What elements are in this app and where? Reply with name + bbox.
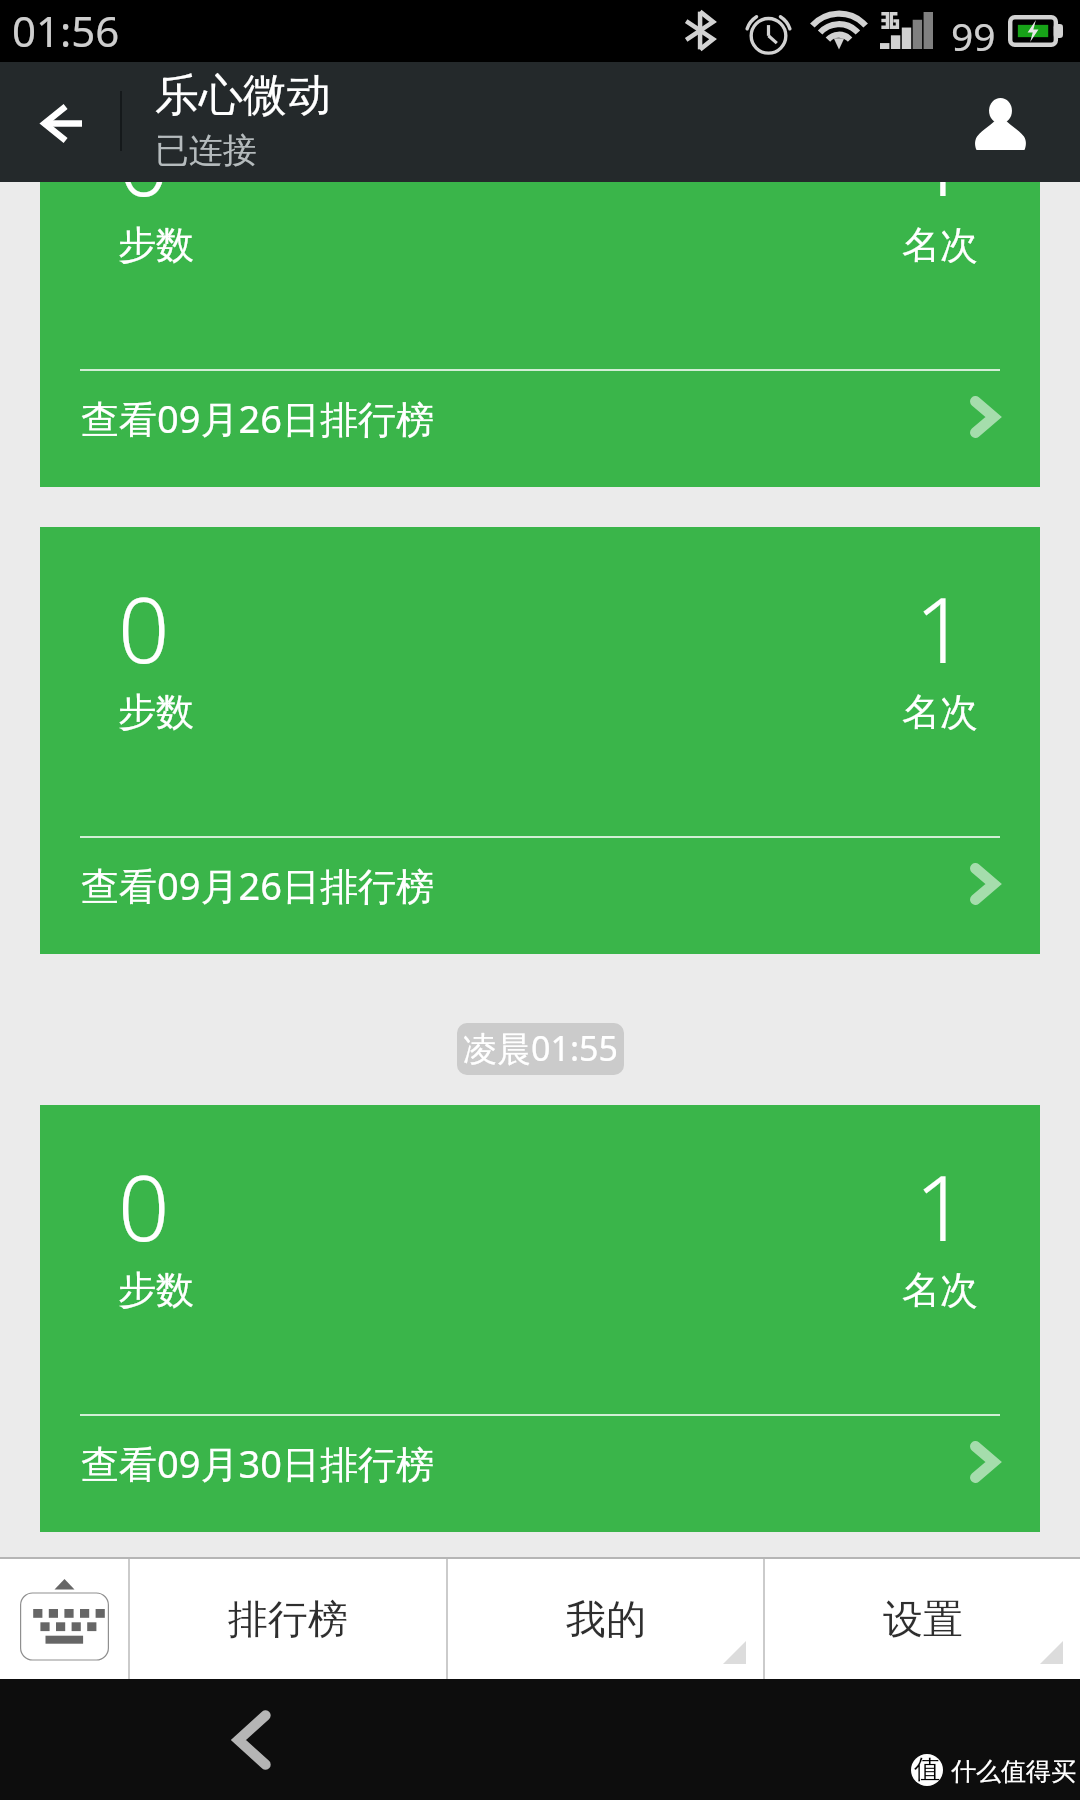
staticText: 我的 xyxy=(566,1594,646,1644)
button[interactable]: 我的 xyxy=(448,1559,763,1679)
staticText: 查看09月26日排行榜 xyxy=(81,392,434,444)
button[interactable]: Profile xyxy=(950,62,1080,182)
staticText: 步数 xyxy=(118,688,194,736)
staticText: 值 xyxy=(914,1754,940,1785)
staticText: 什么值得买 xyxy=(951,1756,1076,1787)
staticText: 步数 xyxy=(118,1266,194,1314)
button[interactable]: 排行榜 xyxy=(130,1559,446,1679)
staticText: 名次 xyxy=(902,1266,978,1314)
staticText: 0 xyxy=(118,182,170,223)
staticText: 步数 xyxy=(118,221,194,269)
button[interactable]: 0 xyxy=(40,1105,1040,1532)
button[interactable]: 0 xyxy=(40,182,1040,487)
staticText: 凌晨01:55 xyxy=(463,1025,618,1071)
staticText: 已连接 xyxy=(155,129,257,172)
staticText: 0 xyxy=(118,567,170,690)
staticText: 0 xyxy=(118,1145,170,1268)
staticText: 查看09月26日排行榜 xyxy=(81,859,434,911)
staticText: 设置 xyxy=(883,1594,963,1644)
staticText: 1 xyxy=(915,1145,967,1268)
staticText: 1 xyxy=(915,182,967,223)
staticText: 01:56 xyxy=(12,2,120,59)
staticText: 排行榜 xyxy=(228,1594,348,1644)
staticText: 乐心微动 xyxy=(155,68,331,123)
button[interactable]: Keyboard xyxy=(0,1559,128,1679)
staticText: 99 xyxy=(951,9,996,62)
staticText: 名次 xyxy=(902,688,978,736)
staticText: 名次 xyxy=(902,221,978,269)
button[interactable]: 设置 xyxy=(765,1559,1080,1679)
button[interactable]: Back xyxy=(196,1684,308,1796)
staticText: 1 xyxy=(915,567,967,690)
button[interactable]: 0 xyxy=(40,527,1040,954)
button[interactable]: Back xyxy=(0,62,132,182)
staticText: 查看09月30日排行榜 xyxy=(81,1437,434,1489)
